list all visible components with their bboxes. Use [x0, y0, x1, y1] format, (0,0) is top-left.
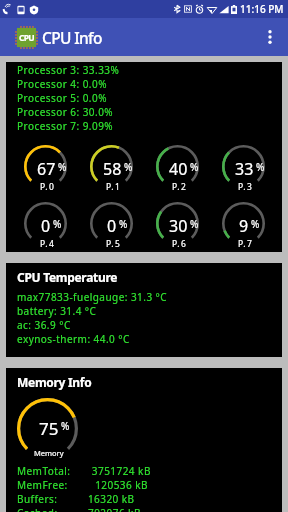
- staticText: P.6: [172, 238, 188, 250]
- staticText: Processor 7: 9.09%: [17, 119, 114, 133]
- staticText: P.7: [238, 238, 254, 250]
- staticText: P.0: [40, 181, 56, 193]
- staticText: CPU Temperature: [17, 269, 118, 285]
- staticText: 11:16 PM: [240, 2, 284, 16]
- staticText: 33: [235, 158, 254, 180]
- staticText: max77833-fuelgauge: 31.3 °C: [17, 290, 168, 304]
- staticText: 0: [107, 215, 117, 237]
- staticText: P.4: [40, 238, 56, 250]
- staticText: Processor 4: 0.0%: [17, 77, 107, 91]
- staticText: P.2: [172, 181, 188, 193]
- staticText: %: [124, 160, 133, 174]
- staticText: 9: [239, 215, 249, 237]
- staticText: %: [251, 217, 260, 231]
- staticText: %: [61, 419, 70, 433]
- staticText: Memory: [34, 448, 64, 458]
- staticText: %: [119, 217, 128, 231]
- staticText: CPU: [19, 32, 34, 44]
- staticText: 67: [37, 158, 56, 180]
- staticText: Buffers: 16320 kB: [17, 492, 135, 506]
- staticText: P.3: [238, 181, 254, 193]
- staticText: 0: [41, 215, 51, 237]
- staticText: ac: 36.9 °C: [17, 318, 71, 332]
- staticText: Processor 5: 0.0%: [17, 91, 107, 105]
- staticText: %: [190, 160, 199, 174]
- staticText: %: [58, 160, 67, 174]
- staticText: 30: [169, 215, 188, 237]
- staticText: %: [53, 217, 62, 231]
- button[interactable]: More options: [252, 19, 288, 55]
- staticText: Memory Info: [17, 374, 92, 390]
- staticText: Processor 3: 33.33%: [17, 63, 120, 77]
- staticText: CPU Info: [42, 27, 102, 48]
- staticText: %: [256, 160, 265, 174]
- button[interactable]: Processor 3: 33.33%: [6, 62, 282, 252]
- staticText: 58: [103, 158, 122, 180]
- button[interactable]: CPU Temperature: [6, 263, 282, 357]
- staticText: P.5: [106, 238, 122, 250]
- staticText: MemTotal: 3751724 kB: [17, 464, 151, 478]
- staticText: exynos-therm: 44.0 °C: [17, 332, 130, 346]
- staticText: 75: [39, 417, 59, 440]
- staticText: %: [190, 217, 199, 231]
- staticText: MemFree: 120536 kB: [17, 478, 148, 492]
- staticText: battery: 31.4 °C: [17, 304, 97, 318]
- staticText: Processor 6: 30.0%: [17, 105, 114, 119]
- staticText: Cached: 792076 kB: [17, 506, 141, 512]
- staticText: 40: [169, 158, 188, 180]
- staticText: P.1: [106, 181, 122, 193]
- button[interactable]: Memory Info: [6, 368, 282, 512]
